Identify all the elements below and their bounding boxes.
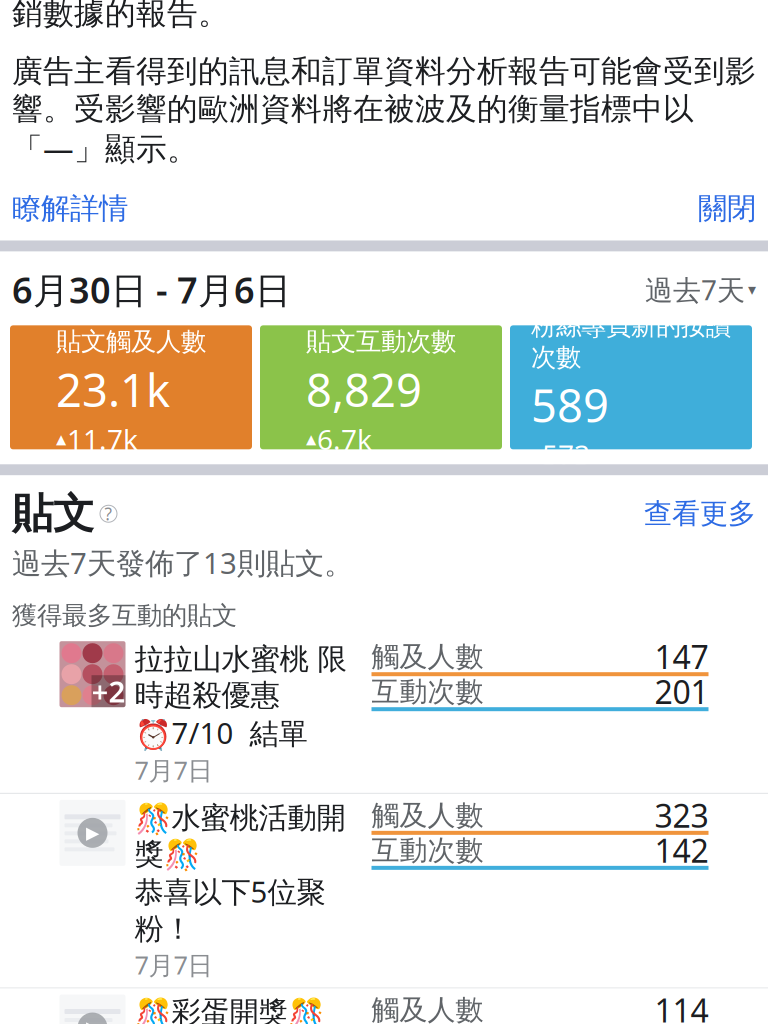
staticText: 7月7日	[134, 948, 212, 981]
staticText: 恭喜以下5位聚粉！	[134, 872, 325, 947]
staticText: 廣告主看得到的訊息和訂單資料分析報告可能會受到影響。受影響的歐洲資料將在被波及的…	[12, 52, 756, 169]
staticText: 關閉	[698, 190, 756, 226]
staticText: 589	[531, 375, 609, 435]
staticText: 瞭解詳情	[12, 190, 128, 226]
staticText: 8,829	[306, 359, 422, 419]
staticText: 23.1k	[56, 359, 170, 419]
staticText: 7月7日	[134, 753, 212, 787]
staticText: 粉絲專頁新的按讚次數	[531, 310, 731, 373]
staticText: 147	[654, 635, 708, 678]
staticText: 114	[654, 989, 708, 1024]
staticText: 觸及人數	[371, 993, 483, 1024]
button[interactable]: 貼文觸及人數	[10, 325, 252, 449]
button[interactable]: +2	[0, 635, 768, 794]
staticText: 互動次數	[371, 674, 483, 709]
staticText: 查看更多	[644, 496, 756, 531]
staticText: ▲	[56, 431, 66, 446]
staticText: 過去7天	[645, 271, 745, 308]
staticText: 互動次數	[371, 833, 483, 868]
staticText: 貼文	[12, 488, 94, 539]
staticText: 201	[654, 670, 708, 713]
button[interactable]: 查看更多	[644, 496, 756, 531]
staticText: 323	[654, 794, 708, 837]
staticText: ⏰7/10 結單	[134, 713, 307, 752]
staticText: 貼文觸及人數	[56, 326, 206, 357]
staticText: ?	[104, 502, 112, 525]
staticText: 觸及人數	[371, 639, 483, 674]
button[interactable]: 過去7天	[645, 271, 756, 308]
staticText: 貼文互動次數	[306, 326, 456, 357]
staticText: 基於歐洲的新隱私規定，我們目前無法提供訊息相關行銷數據的報告。	[12, 0, 756, 32]
button[interactable]: 粉絲專頁新的按讚次數	[510, 325, 752, 449]
button[interactable]: 瞭解詳情	[12, 190, 128, 226]
staticText: 573	[542, 436, 590, 473]
staticText: ▲	[531, 447, 541, 462]
staticText: 過去7天發佈了13則貼文。	[12, 543, 353, 582]
staticText: 6.7k	[317, 420, 372, 458]
staticText: 142	[654, 829, 708, 872]
button[interactable]: 關閉	[698, 190, 756, 226]
staticText: ▲	[306, 431, 316, 446]
staticText: 觸及人數	[371, 798, 483, 833]
button[interactable]: 說明	[94, 505, 117, 522]
button[interactable]: ▶	[0, 988, 768, 1024]
staticText: 拉拉山水蜜桃 限時超殺優惠	[134, 641, 346, 713]
staticText: ▾	[748, 280, 756, 299]
staticText: ▶	[86, 1018, 99, 1024]
staticText: 🎊彩蛋開獎🎊	[134, 994, 324, 1024]
staticText: 獲得最多互動的貼文	[12, 600, 237, 631]
staticText: ▶	[86, 823, 99, 843]
staticText: +2	[91, 672, 125, 711]
staticText: 🎊水蜜桃活動開獎🎊	[134, 800, 345, 872]
staticText: 6月30日 - 7月6日	[12, 265, 291, 313]
staticText: 11.7k	[67, 420, 138, 458]
button[interactable]: 貼文互動次數	[260, 325, 502, 449]
button[interactable]: ▶	[0, 794, 768, 988]
